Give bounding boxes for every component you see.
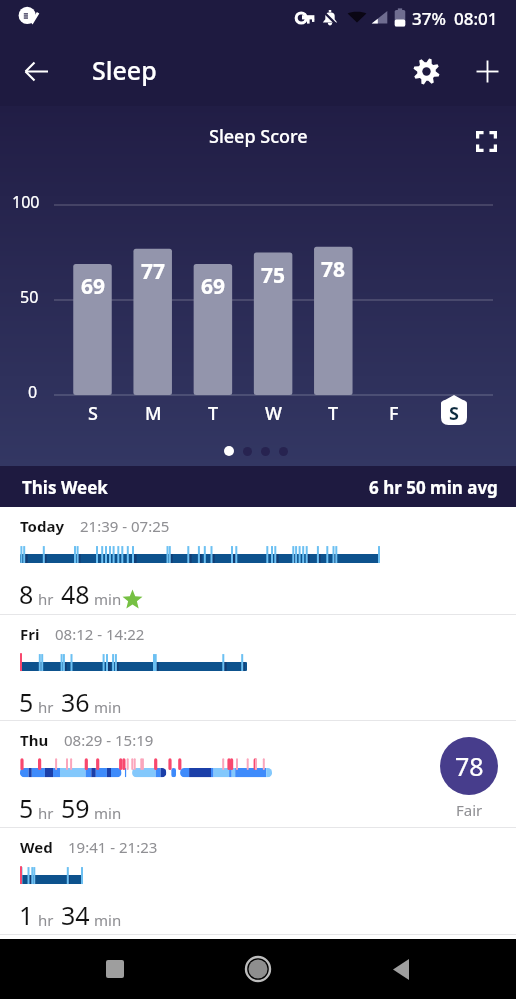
staticText: 37% xyxy=(412,7,446,30)
staticText: This Week xyxy=(22,476,108,499)
staticText: 50 xyxy=(20,286,39,308)
staticText: 59 xyxy=(61,791,90,825)
staticText: T xyxy=(208,401,219,426)
staticText: 5 xyxy=(19,685,34,719)
staticText: Sleep xyxy=(92,53,157,87)
staticText: min xyxy=(94,910,122,930)
staticText: T xyxy=(328,401,339,426)
staticText: Fri xyxy=(20,624,40,644)
staticText: 34 xyxy=(61,898,90,932)
staticText: S xyxy=(88,401,98,426)
staticText: S xyxy=(449,401,459,426)
staticText: 08:29 - 15:19 xyxy=(64,730,154,750)
staticText: 6 hr 50 min avg xyxy=(369,476,498,499)
staticText: 78 xyxy=(321,255,346,284)
staticText: min xyxy=(94,697,122,717)
staticText: hr xyxy=(38,803,54,823)
staticText: 19:41 - 21:23 xyxy=(68,837,158,857)
button[interactable]: Fullscreen xyxy=(464,119,508,163)
staticText: hr xyxy=(38,697,54,717)
staticText: hr xyxy=(38,589,54,609)
staticText: Thu xyxy=(20,730,49,750)
button[interactable]: Back xyxy=(377,945,425,993)
button[interactable]: Wed xyxy=(0,828,516,934)
button[interactable]: Settings xyxy=(402,47,450,95)
staticText: 0 xyxy=(28,381,38,403)
staticText: 69 xyxy=(201,272,226,301)
staticText: 21:39 - 07:25 xyxy=(80,516,170,536)
staticText: 5 xyxy=(19,791,34,825)
staticText: 100 xyxy=(12,191,40,213)
staticText: Fair xyxy=(456,800,483,820)
staticText: 36 xyxy=(61,685,90,719)
staticText: 75 xyxy=(261,261,286,290)
staticText: 08:12 - 14:22 xyxy=(55,624,145,644)
staticText: hr xyxy=(38,910,54,930)
staticText: 48 xyxy=(61,577,90,611)
staticText: 69 xyxy=(81,272,106,301)
staticText: M xyxy=(145,401,162,426)
staticText: 08:01 xyxy=(454,7,498,30)
button[interactable]: Recents xyxy=(91,945,139,993)
button[interactable]: Home xyxy=(234,945,282,993)
staticText: W xyxy=(265,401,282,426)
staticText: 78 xyxy=(455,749,484,783)
staticText: Today xyxy=(20,516,65,536)
staticText: min xyxy=(94,803,122,823)
button[interactable]: Thu xyxy=(0,721,516,827)
staticText: 77 xyxy=(141,257,166,286)
button[interactable]: Today xyxy=(0,507,516,614)
staticText: 8 xyxy=(19,577,34,611)
button[interactable]: Fri xyxy=(0,615,516,720)
staticText: min xyxy=(94,589,122,609)
staticText: F xyxy=(389,401,399,426)
staticText: Sleep Score xyxy=(209,124,308,149)
button[interactable]: Add xyxy=(463,47,511,95)
staticText: 1 xyxy=(19,898,34,932)
button[interactable]: Back xyxy=(12,47,60,95)
staticText: Wed xyxy=(20,837,53,857)
